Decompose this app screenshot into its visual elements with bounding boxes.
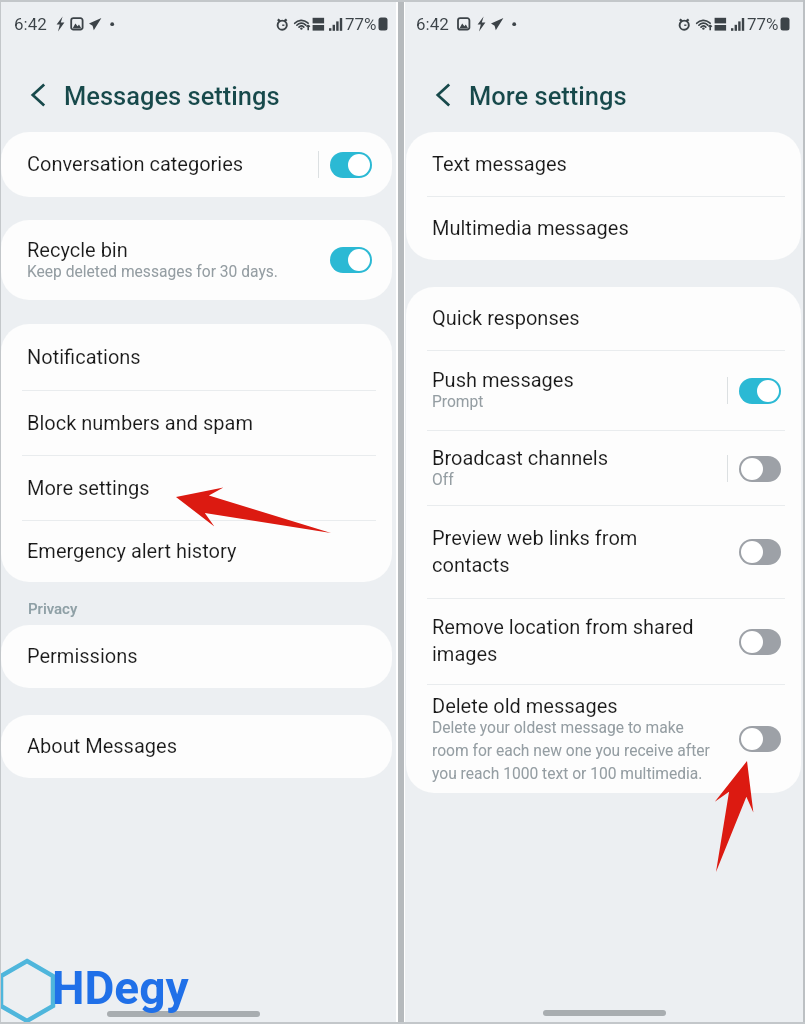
staticText: Block numbers and spam — [27, 411, 253, 434]
staticText: Privacy — [28, 600, 78, 618]
button[interactable]: Remove location from shared images — [406, 599, 801, 684]
staticText: Delete old messages — [432, 694, 704, 717]
staticText: 77% — [345, 14, 377, 34]
button[interactable]: Multimedia messages — [406, 197, 801, 260]
staticText: Remove location from shared images — [432, 615, 700, 666]
button[interactable]: Switch on — [727, 377, 781, 404]
staticText: Recycle bin — [27, 238, 128, 261]
button[interactable]: Push messages — [406, 351, 801, 430]
button[interactable]: Emergency alert history — [1, 521, 392, 582]
staticText: Prompt — [432, 393, 484, 411]
staticText: More settings — [27, 476, 150, 499]
staticText: 6:42 — [416, 14, 449, 34]
button[interactable]: Quick responses — [406, 287, 801, 350]
button[interactable]: Navigate up — [427, 78, 461, 112]
staticText: 6:42 — [14, 14, 47, 34]
button[interactable]: Block numbers and spam — [1, 391, 392, 455]
button[interactable]: Recycle bin — [1, 220, 392, 300]
button[interactable]: Navigate up — [22, 78, 56, 112]
button[interactable]: Delete old messages — [406, 685, 801, 793]
staticText: About Messages — [27, 734, 177, 757]
staticText: Keep deleted messages for 30 days. — [27, 263, 278, 281]
staticText: 77% — [747, 14, 779, 34]
staticText: Emergency alert history — [27, 539, 237, 562]
staticText: Delete your oldest message to make room … — [432, 719, 724, 783]
button[interactable]: More settings — [1, 456, 392, 520]
button[interactable]: Notifications — [1, 324, 392, 390]
staticText: Conversation categories — [27, 152, 244, 175]
button[interactable]: Switch off — [727, 455, 781, 482]
button[interactable]: Switch off — [727, 539, 781, 565]
staticText: Push messages — [432, 368, 574, 391]
button[interactable]: Text messages — [406, 132, 801, 196]
staticText: Quick responses — [432, 306, 580, 329]
button[interactable]: About Messages — [1, 715, 392, 778]
staticText: Permissions — [27, 644, 138, 667]
button[interactable]: Switch on — [318, 151, 372, 178]
staticText: More settings — [469, 81, 627, 111]
staticText: Messages settings — [64, 81, 280, 111]
button[interactable]: Broadcast channels — [406, 431, 801, 505]
staticText: Multimedia messages — [432, 216, 629, 239]
button[interactable]: Preview web links from contacts — [406, 506, 801, 598]
staticText: Broadcast channels — [432, 446, 609, 469]
button[interactable]: Permissions — [1, 625, 392, 688]
staticText: Off — [432, 471, 454, 489]
staticText: Preview web links from contacts — [432, 526, 694, 577]
button[interactable]: Conversation categories — [1, 132, 392, 197]
staticText: Notifications — [27, 345, 141, 368]
button[interactable]: Switch off — [727, 629, 781, 655]
staticText: Text messages — [432, 152, 567, 175]
button[interactable]: Switch off — [727, 726, 781, 752]
button[interactable]: Switch on — [318, 247, 372, 273]
staticText: HDegy — [52, 961, 189, 1015]
